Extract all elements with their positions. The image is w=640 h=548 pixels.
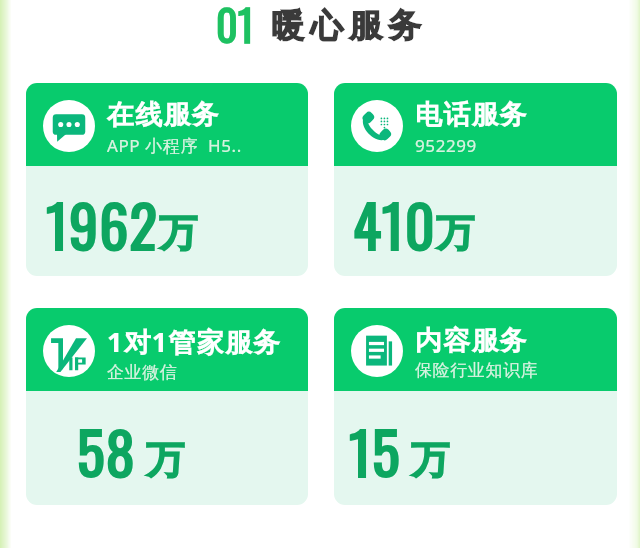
other: 1对1管家服务 bbox=[43, 325, 95, 377]
other: 在线服务 bbox=[43, 100, 95, 152]
staticText: 410 bbox=[353, 181, 436, 267]
button[interactable]: 1对1管家服务 bbox=[26, 308, 308, 505]
staticText: 58 bbox=[77, 408, 136, 494]
staticText: 在线服务 bbox=[107, 98, 220, 132]
button[interactable]: 内容服务 bbox=[334, 308, 617, 505]
staticText: 暖心服务 bbox=[268, 5, 424, 47]
button[interactable]: 电话服务 bbox=[334, 83, 617, 276]
staticText: 952299 bbox=[415, 134, 477, 157]
staticText: 01 bbox=[216, 0, 254, 55]
staticText: 保险行业知识库 bbox=[415, 360, 539, 381]
staticText: 企业微信 bbox=[107, 362, 178, 383]
staticText: 万 bbox=[436, 209, 474, 257]
other: 内容服务 bbox=[351, 325, 403, 377]
staticText: 万 bbox=[401, 432, 449, 484]
staticText: 15 bbox=[349, 408, 401, 494]
button[interactable]: 在线服务 bbox=[26, 83, 308, 276]
staticText: 电话服务 bbox=[415, 98, 528, 132]
staticText: 1对1管家服务 bbox=[107, 323, 282, 360]
staticText: 1962 bbox=[46, 181, 159, 267]
staticText: APP 小程序 H5.. bbox=[107, 134, 242, 157]
other: 电话服务 bbox=[351, 100, 403, 152]
staticText: 万 bbox=[159, 209, 197, 257]
staticText: 内容服务 bbox=[415, 324, 528, 358]
staticText: 万 bbox=[136, 432, 184, 484]
